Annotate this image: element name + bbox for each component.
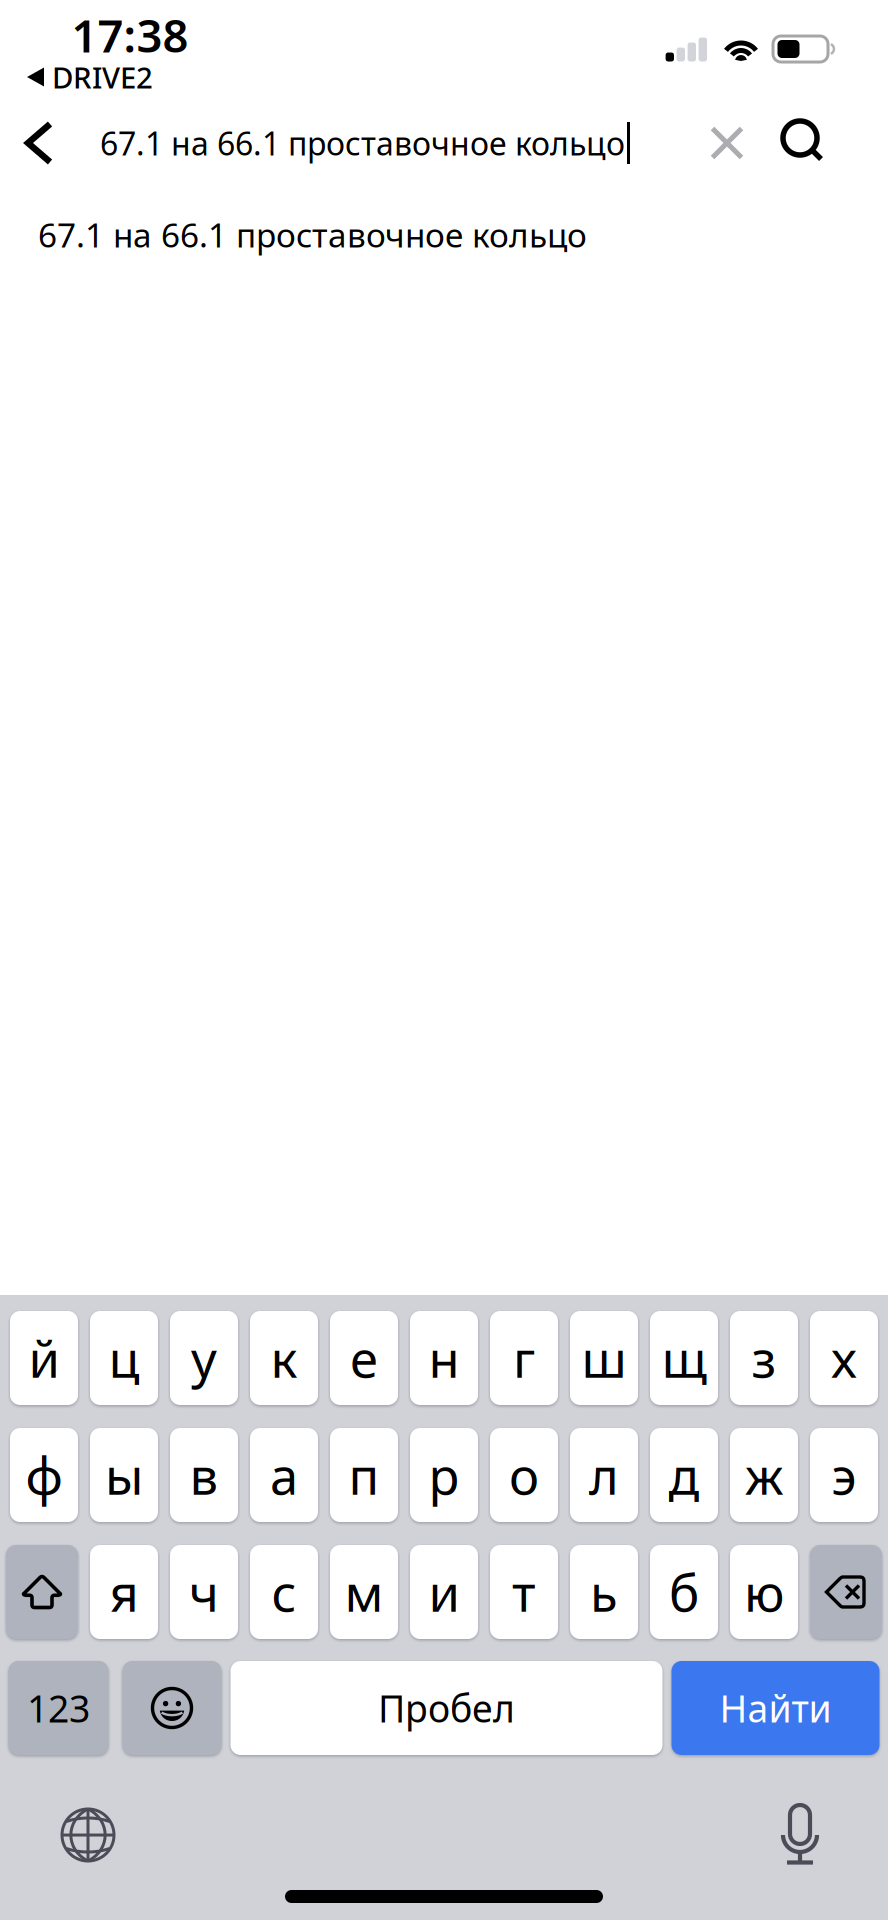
button[interactable]: р: [410, 1428, 478, 1522]
staticText: Найти: [719, 1683, 831, 1733]
staticText: я: [109, 1558, 138, 1626]
staticText: ж: [745, 1441, 783, 1509]
staticText: 67.1 на 66.1 проставочное кольцо: [38, 212, 587, 257]
button[interactable]: и: [410, 1545, 478, 1639]
button[interactable]: д: [650, 1428, 718, 1522]
staticText: б: [669, 1558, 699, 1626]
staticText: к: [270, 1324, 297, 1392]
button[interactable]: э: [810, 1428, 878, 1522]
button[interactable]: т: [490, 1545, 558, 1639]
staticText: ш: [581, 1324, 626, 1392]
button[interactable]: Emoji: [122, 1661, 221, 1755]
button[interactable]: к: [250, 1311, 318, 1405]
staticText: и: [428, 1558, 459, 1626]
staticText: щ: [661, 1324, 706, 1392]
staticText: л: [589, 1441, 619, 1509]
staticText: з: [751, 1324, 776, 1392]
button[interactable]: н: [410, 1311, 478, 1405]
button[interactable]: а: [250, 1428, 318, 1522]
button[interactable]: ж: [730, 1428, 798, 1522]
button[interactable]: щ: [650, 1311, 718, 1405]
button[interactable]: Back: [0, 96, 78, 190]
button[interactable]: е: [330, 1311, 398, 1405]
staticText: ч: [189, 1558, 219, 1626]
button[interactable]: у: [170, 1311, 238, 1405]
button[interactable]: с: [250, 1545, 318, 1639]
staticText: ь: [590, 1558, 618, 1626]
staticText: Пробел: [378, 1683, 515, 1733]
button[interactable]: Next keyboard: [44, 1803, 132, 1867]
staticText: н: [428, 1324, 459, 1392]
button[interactable]: ч: [170, 1545, 238, 1639]
button[interactable]: в: [170, 1428, 238, 1522]
button[interactable]: ю: [730, 1545, 798, 1639]
button[interactable]: з: [730, 1311, 798, 1405]
button[interactable]: Clear: [690, 96, 764, 190]
staticText: й: [28, 1324, 59, 1392]
staticText: п: [348, 1441, 379, 1509]
staticText: р: [428, 1441, 459, 1509]
button[interactable]: м: [330, 1545, 398, 1639]
staticText: 17:38: [71, 5, 188, 65]
staticText: ы: [105, 1441, 143, 1509]
button[interactable]: й: [10, 1311, 78, 1405]
button[interactable]: о: [490, 1428, 558, 1522]
staticText: ф: [25, 1441, 62, 1509]
button[interactable]: Shift: [6, 1545, 78, 1639]
button[interactable]: Найти: [671, 1661, 879, 1755]
staticText: т: [512, 1558, 536, 1626]
button[interactable]: я: [90, 1545, 158, 1639]
button[interactable]: г: [490, 1311, 558, 1405]
staticText: д: [668, 1441, 699, 1509]
staticText: м: [344, 1558, 383, 1626]
button[interactable]: ь: [570, 1545, 638, 1639]
button[interactable]: ы: [90, 1428, 158, 1522]
staticText: е: [350, 1324, 378, 1392]
button[interactable]: Пробел: [230, 1661, 662, 1755]
button[interactable]: б: [650, 1545, 718, 1639]
staticText: 67.1 на 66.1 проставочное кольцо: [100, 122, 625, 164]
staticText: ю: [744, 1558, 784, 1626]
staticText: 123: [27, 1683, 90, 1733]
staticText: х: [831, 1324, 857, 1392]
staticText: э: [831, 1441, 856, 1509]
button[interactable]: Delete: [810, 1545, 882, 1639]
staticText: у: [191, 1324, 217, 1392]
staticText: о: [509, 1441, 539, 1509]
button[interactable]: х: [810, 1311, 878, 1405]
button[interactable]: 67.1 на 66.1 проставочное кольцо: [0, 190, 888, 279]
staticText: DRIVE2: [52, 57, 153, 96]
button[interactable]: ц: [90, 1311, 158, 1405]
staticText: г: [513, 1324, 535, 1392]
staticText: с: [271, 1558, 296, 1626]
staticText: в: [189, 1441, 218, 1509]
button[interactable]: Numbers: [8, 1661, 108, 1755]
staticText: а: [270, 1441, 298, 1509]
button[interactable]: Search: [764, 96, 846, 190]
button[interactable]: п: [330, 1428, 398, 1522]
button[interactable]: Dictate: [756, 1803, 844, 1867]
button[interactable]: ш: [570, 1311, 638, 1405]
staticText: ц: [108, 1324, 139, 1392]
button[interactable]: л: [570, 1428, 638, 1522]
button[interactable]: ф: [10, 1428, 78, 1522]
